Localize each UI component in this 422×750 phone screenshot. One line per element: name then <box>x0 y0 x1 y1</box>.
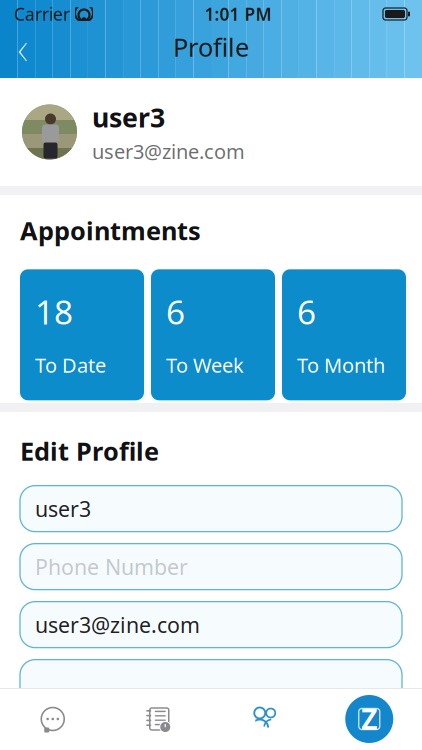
staticText: Appointments <box>20 214 201 247</box>
button[interactable]: Profile <box>211 688 316 750</box>
button[interactable]: user3@zine.com <box>20 602 402 648</box>
staticText: ‹ <box>17 15 28 79</box>
staticText: 18 <box>35 289 73 334</box>
staticText: user3@zine.com <box>35 610 200 639</box>
button[interactable]: user3 <box>20 486 402 532</box>
staticText: To Month <box>297 352 385 378</box>
staticText: 1:01 PM <box>204 2 271 25</box>
staticText: user3@zine.com <box>92 138 245 164</box>
staticText: Profile <box>173 30 249 64</box>
button[interactable]: 6 <box>282 269 406 400</box>
staticText: user3 <box>92 99 165 135</box>
staticText: Phone Number <box>35 552 188 581</box>
button[interactable]: Zine Home <box>316 688 422 750</box>
staticText: 6 <box>297 289 316 334</box>
button[interactable]: Back <box>0 25 46 69</box>
button[interactable]: 18 <box>20 269 144 400</box>
button[interactable]: Appointments <box>105 688 211 750</box>
button[interactable] <box>20 660 402 706</box>
staticText: Z <box>361 700 377 738</box>
staticText: Carrier <box>14 2 70 25</box>
staticText: user3 <box>35 494 91 523</box>
staticText: Edit Profile <box>20 434 159 468</box>
staticText: To Week <box>166 352 244 378</box>
staticText: 6 <box>166 289 185 334</box>
button[interactable]: 6 <box>151 269 275 400</box>
button[interactable]: Phone Number <box>20 544 402 590</box>
button[interactable]: Messages <box>0 688 105 750</box>
staticText: To Date <box>35 352 106 378</box>
